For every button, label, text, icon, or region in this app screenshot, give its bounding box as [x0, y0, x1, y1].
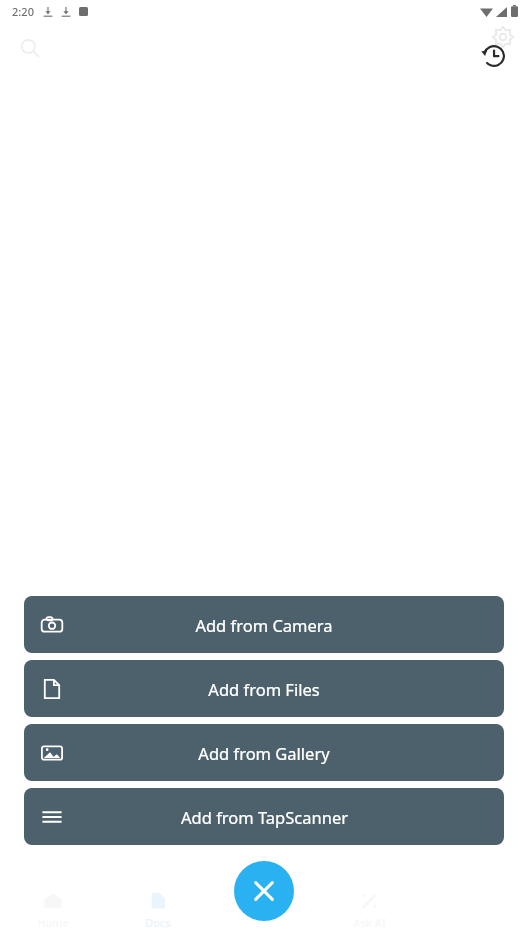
button[interactable]: Add from Gallery [24, 724, 504, 781]
button[interactable]: Search [8, 26, 52, 70]
button[interactable]: Close [234, 861, 294, 921]
button[interactable]: History [476, 38, 510, 72]
staticText: Add from Gallery [198, 742, 330, 764]
staticText: Docs [145, 915, 171, 930]
staticText: Add from Files [208, 678, 320, 700]
staticText: Home [37, 915, 69, 930]
staticText: Add from TapScanner [181, 806, 348, 828]
button[interactable]: Docs [105, 880, 210, 940]
button[interactable]: Settings [490, 24, 516, 50]
button[interactable]: Add from Camera [24, 596, 504, 653]
button[interactable]: Add from Files [24, 660, 504, 717]
staticText: Add from Camera [195, 614, 333, 636]
button[interactable]: Add from TapScanner [24, 788, 504, 845]
staticText: Ask AI [353, 915, 386, 930]
staticText: 2:20 [12, 4, 34, 19]
